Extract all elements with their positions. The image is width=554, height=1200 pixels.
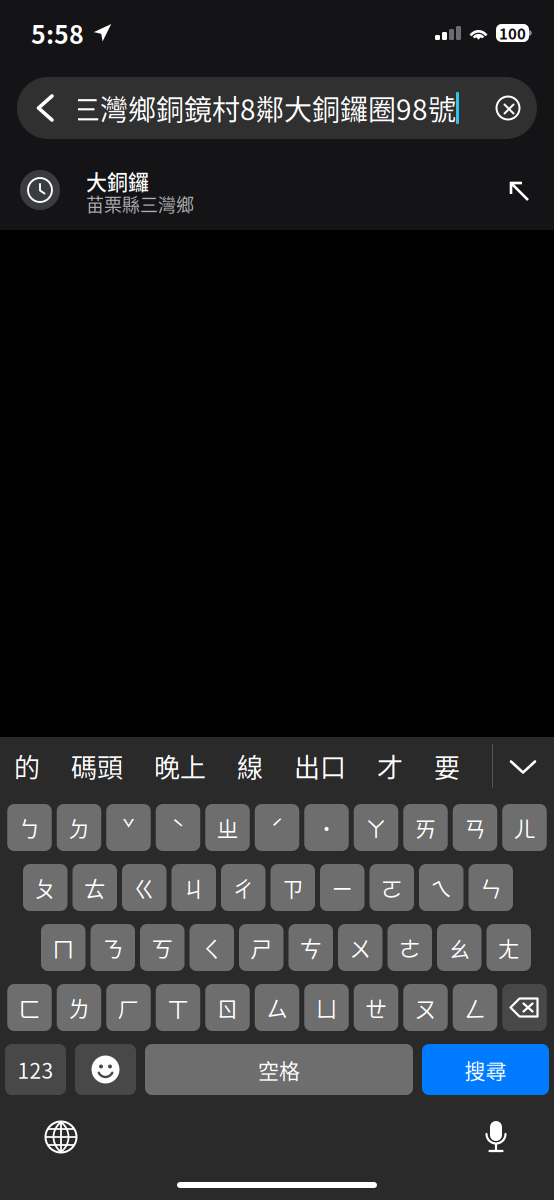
button[interactable]: 晚上 [141,737,219,795]
button[interactable]: ㄈ [7,984,52,1031]
button[interactable]: ㄕ [239,924,283,971]
staticText: ㄙ [266,992,288,1023]
staticText: ㄏ [117,992,139,1023]
button[interactable]: Switch keyboard [31,1107,91,1167]
button[interactable]: 搜尋 [422,1044,549,1095]
staticText: ˙ [321,812,332,843]
staticText: 要 [434,747,460,785]
staticText: ㄍ [133,872,155,903]
staticText: ㄗ [282,872,304,903]
staticText: 大銅鑼 [86,165,149,196]
staticText: ㄒ [167,992,189,1023]
button[interactable]: 碼頭 [58,737,136,795]
button[interactable]: ㄊ [72,864,117,911]
button[interactable]: ˇ [106,804,151,851]
staticText: ㄨ [349,932,371,963]
button[interactable]: 要 [421,737,473,795]
button[interactable]: 出口 [281,737,359,795]
button[interactable]: ㄗ [270,864,315,911]
button[interactable]: 才 [364,737,416,795]
button[interactable]: 的 [1,737,53,795]
button[interactable]: ㄋ [90,924,135,971]
staticText: ㄐ [183,872,205,903]
staticText: ㄖ [216,992,238,1023]
button[interactable]: ㄇ [41,924,85,971]
staticText: 123 [17,1054,53,1085]
button[interactable]: Back [17,77,78,139]
staticText: ㄕ [250,932,272,963]
staticText: ㄈ [18,992,40,1023]
staticText: ㄘ [300,932,322,963]
button[interactable]: Delete [502,984,547,1031]
staticText: ㄣ [480,872,502,903]
button[interactable]: ㄔ [221,864,265,911]
staticText: 100 [499,22,526,44]
staticText: 搜尋 [464,1054,506,1085]
button[interactable]: ㄩ [304,984,349,1031]
button[interactable]: 空格 [145,1044,413,1095]
button[interactable]: ㄠ [437,924,481,971]
staticText: ㄚ [365,812,387,843]
button[interactable]: ㄤ [486,924,531,971]
staticText: ㄎ [151,932,173,963]
staticText: ㄇ [52,932,74,963]
button[interactable]: ㄞ [403,804,448,851]
staticText: ˇ [122,812,135,843]
staticText: 三灣鄉銅鏡村8鄰大銅鑼圈98號 [72,88,456,128]
button[interactable]: ㄓ [205,804,250,851]
staticText: ˊ [270,812,283,843]
button[interactable]: 線 [224,737,276,795]
button[interactable]: ㄎ [140,924,184,971]
staticText: 空格 [258,1054,300,1085]
button[interactable]: ㄟ [419,864,463,911]
button[interactable]: 大銅鑼 [0,152,554,228]
button[interactable]: ㄑ [189,924,234,971]
button[interactable]: ㄅ [7,804,52,851]
staticText: 的 [14,747,40,785]
staticText: ㄩ [315,992,337,1023]
staticText: 晚上 [154,747,206,785]
button[interactable]: ˙ [304,804,349,851]
staticText: ㄟ [430,872,452,903]
button[interactable]: ㄨ [338,924,382,971]
button[interactable]: Clear text [479,77,537,139]
staticText: ㄑ [201,932,223,963]
button[interactable]: ㄉ [57,804,101,851]
button[interactable]: ㄧ [320,864,364,911]
button[interactable]: Dictation [469,1106,523,1168]
button[interactable]: ˊ [255,804,299,851]
button[interactable]: ㄝ [354,984,398,1031]
button[interactable]: ㄘ [288,924,333,971]
staticText: ㄝ [365,992,387,1023]
staticText: ㄞ [414,812,436,843]
button[interactable]: ㄣ [468,864,513,911]
button[interactable]: Emoji [75,1044,136,1095]
button[interactable]: ㄦ [502,804,547,851]
button[interactable]: ˋ [156,804,200,851]
button[interactable]: ㄚ [354,804,398,851]
staticText: ㄆ [34,872,56,903]
staticText: ㄠ [448,932,470,963]
button[interactable]: ㄐ [171,864,216,911]
button[interactable]: ㄙ [255,984,299,1031]
button[interactable]: ㄏ [106,984,151,1031]
staticText: ˋ [171,812,184,843]
staticText: ㄥ [464,992,486,1023]
button[interactable]: ㄆ [23,864,67,911]
button[interactable]: ㄌ [57,984,101,1031]
button[interactable]: ㄛ [369,864,414,911]
staticText: ㄊ [84,872,106,903]
staticText: ㄤ [498,932,520,963]
button[interactable]: ㄢ [453,804,497,851]
button[interactable]: ㄜ [387,924,432,971]
staticText: ㄋ [102,932,124,963]
button[interactable]: ㄍ [122,864,166,911]
staticText: ㄢ [464,812,486,843]
button[interactable]: ㄖ [205,984,250,1031]
button[interactable]: ㄒ [156,984,200,1031]
button[interactable]: ㄡ [403,984,448,1031]
button[interactable]: 123 [5,1044,66,1095]
button[interactable]: ㄥ [453,984,497,1031]
staticText: 才 [377,747,403,785]
button[interactable]: Hide candidates [493,737,553,795]
